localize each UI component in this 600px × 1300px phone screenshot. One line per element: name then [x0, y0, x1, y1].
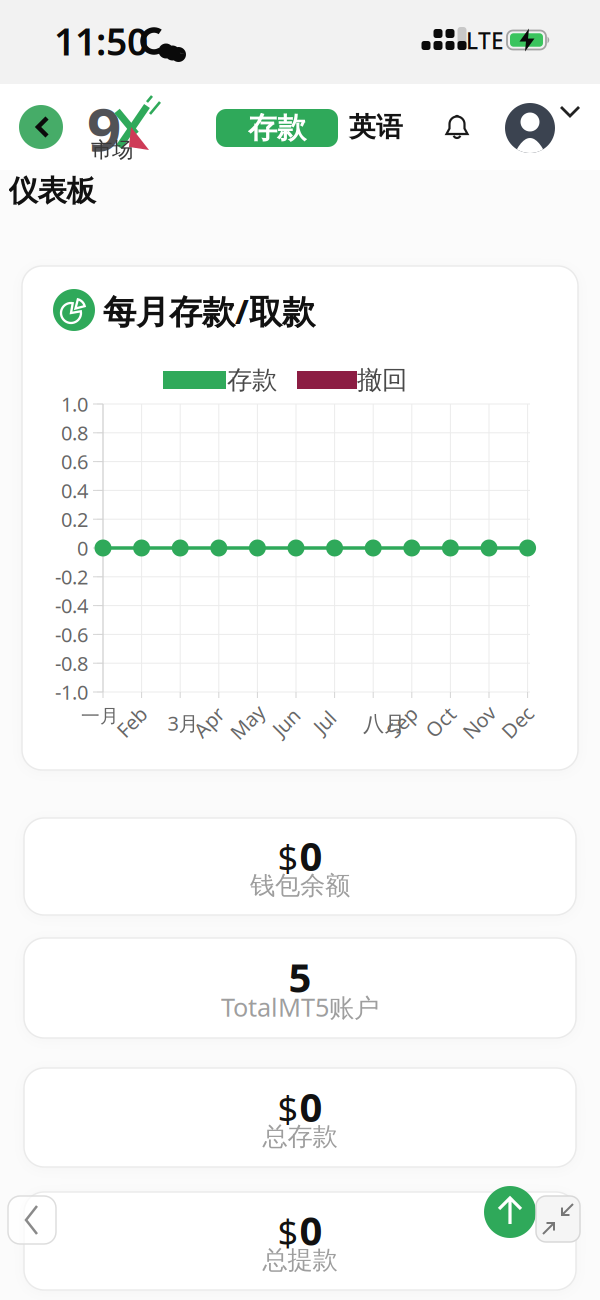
- staticText: 总存款: [262, 1121, 337, 1152]
- staticText: 9: [87, 88, 121, 168]
- staticText: Oct: [424, 709, 457, 735]
- staticText: 市场: [91, 137, 133, 163]
- staticText: 0.6: [61, 448, 88, 475]
- staticText: -0.4: [55, 592, 88, 619]
- button[interactable]: Back: [19, 105, 63, 149]
- staticText: Nov: [460, 709, 497, 735]
- button[interactable]: Scroll to top: [484, 1186, 536, 1238]
- staticText: 3月: [167, 710, 198, 736]
- staticText: $: [277, 1084, 298, 1132]
- staticText: -1.0: [55, 679, 88, 705]
- staticText: LTE: [466, 25, 504, 55]
- staticText: 0: [299, 1203, 322, 1256]
- button[interactable]: Notifications: [439, 110, 475, 146]
- staticText: Jun: [271, 709, 300, 735]
- staticText: Feb: [115, 709, 148, 735]
- staticText: Sep: [385, 709, 419, 735]
- staticText: 5: [288, 950, 311, 1003]
- staticText: 八月: [363, 711, 405, 737]
- staticText: -0.6: [55, 621, 88, 648]
- staticText: $: [277, 833, 298, 881]
- staticText: 0: [299, 1080, 322, 1133]
- button[interactable]: Account: [505, 103, 585, 153]
- button[interactable]: Back: [8, 1196, 56, 1244]
- staticText: 钱包余额: [250, 870, 350, 901]
- staticText: 0.4: [61, 477, 88, 504]
- staticText: 0: [299, 829, 322, 882]
- staticText: Dec: [500, 709, 536, 735]
- staticText: 0: [77, 535, 88, 561]
- button[interactable]: 存款: [216, 109, 338, 147]
- staticText: Jul: [314, 709, 336, 735]
- staticText: 11:50: [54, 16, 148, 66]
- button[interactable]: Collapse: [536, 1196, 580, 1242]
- staticText: Apr: [192, 709, 225, 735]
- staticText: 存款: [248, 110, 306, 146]
- staticText: -0.8: [55, 650, 88, 676]
- button[interactable]: 英语: [349, 111, 403, 143]
- staticText: 每月存款/取款: [103, 289, 315, 333]
- staticText: May: [228, 709, 267, 735]
- staticText: 一月: [81, 704, 119, 727]
- staticText: 0.2: [61, 506, 88, 532]
- staticText: TotalMT5账户: [221, 990, 379, 1024]
- staticText: 总提款: [262, 1244, 337, 1275]
- staticText: 0.8: [61, 419, 88, 446]
- staticText: 1.0: [61, 391, 88, 417]
- staticText: $: [277, 1208, 298, 1255]
- staticText: 英语: [349, 111, 403, 143]
- staticText: 存款: [227, 364, 277, 395]
- staticText: 撤回: [357, 364, 407, 395]
- staticText: -0.2: [55, 563, 88, 590]
- staticText: 仪表板: [8, 173, 95, 209]
